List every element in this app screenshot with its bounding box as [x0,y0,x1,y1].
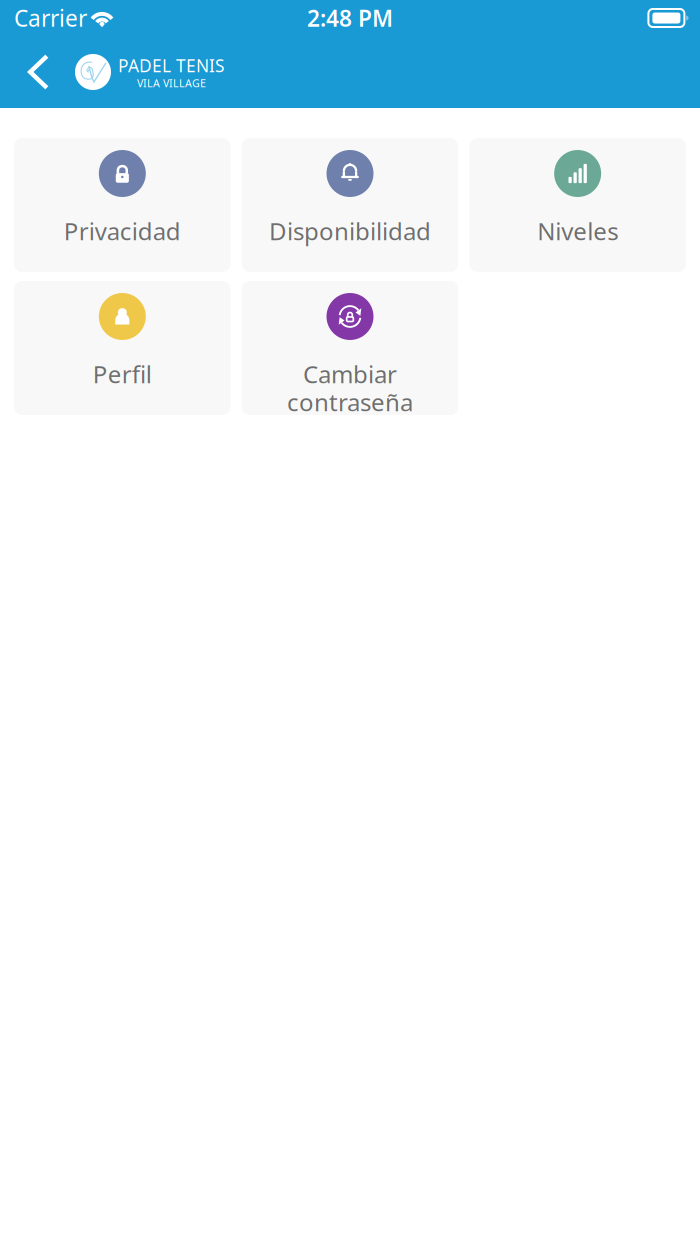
staticText: Carrier [14,3,87,33]
staticText: Perfil [93,358,152,390]
button[interactable]: Cambiar [242,281,458,415]
staticText: Cambiar [303,358,397,390]
button[interactable]: Perfil [14,281,231,415]
button[interactable]: Niveles [469,138,686,272]
staticText: VILA VILLAGE [137,76,206,90]
staticText: 2:48 PM [307,3,393,33]
staticText: Privacidad [64,215,181,247]
button[interactable]: Back [16,46,61,98]
button[interactable]: Disponibilidad [242,138,458,272]
staticText: PADEL TENIS [118,54,225,77]
staticText: Niveles [537,215,618,247]
staticText: Disponibilidad [269,215,431,247]
button[interactable]: Privacidad [14,138,231,272]
staticText: contraseña [287,386,413,418]
